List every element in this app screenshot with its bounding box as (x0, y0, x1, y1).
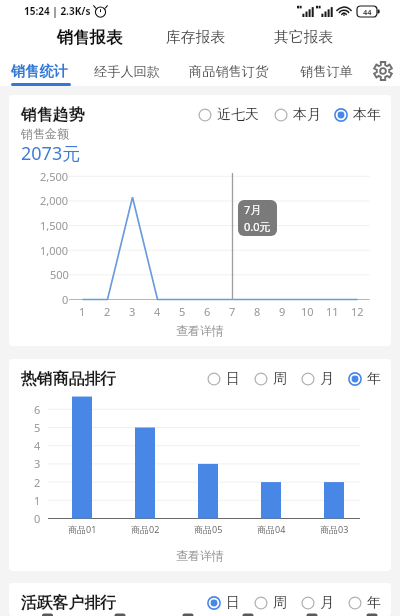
button[interactable]: 月 (300, 591, 335, 615)
staticText: 7月 (244, 202, 262, 217)
staticText: 商品03 (320, 523, 349, 535)
staticText: 周 (273, 594, 287, 612)
staticText: 2 (104, 304, 111, 319)
button[interactable]: 其它报表 (268, 23, 340, 52)
staticText: 10 (301, 304, 314, 319)
staticText: 销售趋势 (21, 105, 85, 125)
staticText: 1 (34, 493, 41, 508)
staticText: 9 (279, 304, 286, 319)
staticText: 近七天 (217, 106, 259, 124)
staticText: 4 (154, 304, 161, 319)
staticText: 本年 (353, 106, 381, 124)
staticText: 销售金额 (21, 126, 69, 141)
button[interactable]: 查看详情 (168, 320, 232, 341)
button[interactable]: 周 (253, 591, 288, 615)
staticText: 1,000 (40, 243, 69, 258)
staticText: 1,500 (40, 218, 69, 233)
staticText: 44 (363, 7, 372, 17)
button[interactable]: 周 (253, 367, 288, 391)
staticText: 周 (273, 370, 287, 388)
staticText: 3 (129, 304, 136, 319)
staticText: 本月 (293, 106, 321, 124)
button[interactable]: 商品销售订货 (183, 59, 275, 84)
staticText: 销售统计 (11, 62, 68, 80)
staticText: 4 (34, 438, 41, 453)
button[interactable]: 年 (347, 591, 382, 615)
button[interactable]: 日 (206, 367, 241, 391)
button[interactable]: 月 (300, 367, 335, 391)
staticText: 2073元 (21, 141, 81, 166)
staticText: 8 (254, 304, 261, 319)
button[interactable]: 销售报表 (51, 22, 129, 53)
staticText: 热销商品排行 (21, 369, 116, 389)
staticText: 商品04 (257, 523, 286, 535)
staticText: 商品01 (68, 523, 97, 535)
staticText: 6 (34, 402, 41, 417)
staticText: 月 (320, 594, 334, 612)
button[interactable]: 经手人回款 (88, 59, 166, 84)
button[interactable]: 本年 (333, 103, 382, 127)
staticText: 其它报表 (274, 28, 334, 47)
staticText: 库存报表 (166, 28, 226, 47)
staticText: 经手人回款 (94, 63, 160, 80)
staticText: 15:24 | 2.3K/s (24, 4, 91, 18)
staticText: 2,000 (40, 193, 69, 208)
staticText: 商品05 (194, 523, 223, 535)
staticText: 5 (179, 304, 186, 319)
staticText: 销售订单 (300, 63, 353, 80)
staticText: 销售报表 (57, 27, 123, 48)
button[interactable]: 年 (347, 367, 382, 391)
button[interactable]: 近七天 (197, 103, 260, 127)
staticText: 5 (34, 420, 41, 435)
staticText: 12 (351, 304, 364, 319)
button[interactable]: 日 (206, 591, 241, 615)
staticText: 7 (229, 304, 236, 319)
staticText: 年 (367, 594, 381, 612)
staticText: 0.0元 (244, 219, 271, 234)
button[interactable]: 查看详情 (168, 545, 232, 566)
staticText: 日 (226, 594, 240, 612)
button[interactable]: 销售统计 (0, 58, 79, 84)
button[interactable]: 库存报表 (160, 23, 232, 52)
staticText: 0 (62, 292, 69, 307)
staticText: 3 (34, 456, 41, 471)
staticText: 0 (34, 511, 41, 526)
staticText: 6 (204, 304, 211, 319)
staticText: 1 (79, 304, 86, 319)
staticText: 月 (320, 370, 334, 388)
staticText: 2,500 (40, 169, 69, 184)
staticText: 商品02 (131, 523, 160, 535)
staticText: 年 (367, 370, 381, 388)
staticText: 500 (50, 267, 69, 282)
staticText: 查看详情 (176, 323, 224, 338)
staticText: 11 (326, 304, 339, 319)
staticText: 查看详情 (176, 548, 224, 563)
button[interactable]: 本月 (273, 103, 322, 127)
staticText: 活跃客户排行 (21, 593, 116, 613)
button[interactable]: Settings (368, 56, 398, 86)
staticText: 2 (34, 475, 41, 490)
staticText: 日 (226, 370, 240, 388)
staticText: 商品销售订货 (189, 63, 269, 80)
button[interactable]: 销售订单 (294, 59, 359, 84)
